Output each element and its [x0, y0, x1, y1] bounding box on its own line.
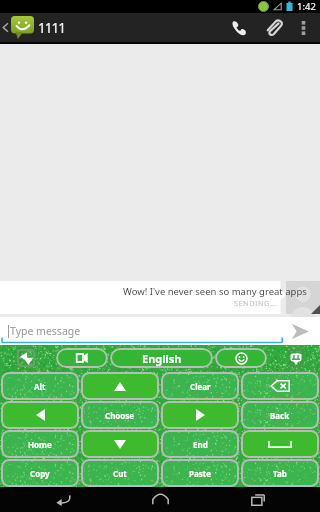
button[interactable]	[0, 13, 36, 42]
staticText: Type message	[10, 324, 81, 338]
button[interactable]	[1, 401, 79, 429]
button[interactable]: Recents	[223, 487, 293, 512]
button[interactable]: Cut	[81, 459, 159, 487]
button[interactable]: Choose	[81, 401, 159, 429]
staticText: Wow! I've never seen so many great apps	[123, 285, 307, 298]
staticText: Back	[270, 410, 290, 421]
staticText: Home	[28, 439, 52, 450]
staticText: Copy	[30, 468, 50, 479]
button[interactable]	[56, 348, 108, 368]
button[interactable]: Home	[125, 487, 195, 512]
button[interactable]: Type message	[8, 324, 81, 339]
staticText: Clear	[190, 381, 211, 392]
button[interactable]: Send	[280, 317, 320, 345]
button[interactable]	[215, 348, 267, 368]
button[interactable]: Paste	[161, 459, 239, 487]
staticText: Alt	[34, 381, 46, 392]
staticText: Choose	[105, 410, 135, 421]
staticText: End	[193, 439, 208, 450]
button[interactable]: Call	[221, 13, 256, 42]
button[interactable]: Back	[28, 487, 98, 512]
button[interactable]: Alt	[1, 372, 79, 400]
staticText: Paste	[189, 468, 212, 479]
button[interactable]	[81, 430, 159, 458]
staticText: Tab	[273, 468, 287, 479]
staticText: English	[142, 351, 182, 366]
button[interactable]	[81, 372, 159, 400]
button[interactable]: Attach	[256, 13, 291, 42]
button[interactable]: English	[110, 348, 213, 368]
button[interactable]: More options	[291, 13, 315, 42]
button[interactable]: Tab	[241, 459, 319, 487]
button[interactable]: Hide keyboard	[286, 349, 305, 368]
button[interactable]: Clear	[161, 372, 239, 400]
staticText: Cut	[113, 468, 127, 479]
button[interactable]	[241, 372, 319, 400]
button[interactable]: Home	[1, 430, 79, 458]
button[interactable]: Back	[241, 401, 319, 429]
button[interactable]	[241, 430, 319, 458]
staticText: SENDING...	[234, 298, 278, 308]
button[interactable]: Back	[17, 349, 35, 367]
button[interactable]: Copy	[1, 459, 79, 487]
staticText: 1111	[38, 19, 65, 37]
button[interactable]: End	[161, 430, 239, 458]
staticText: 1:42	[297, 0, 316, 13]
button[interactable]	[161, 401, 239, 429]
